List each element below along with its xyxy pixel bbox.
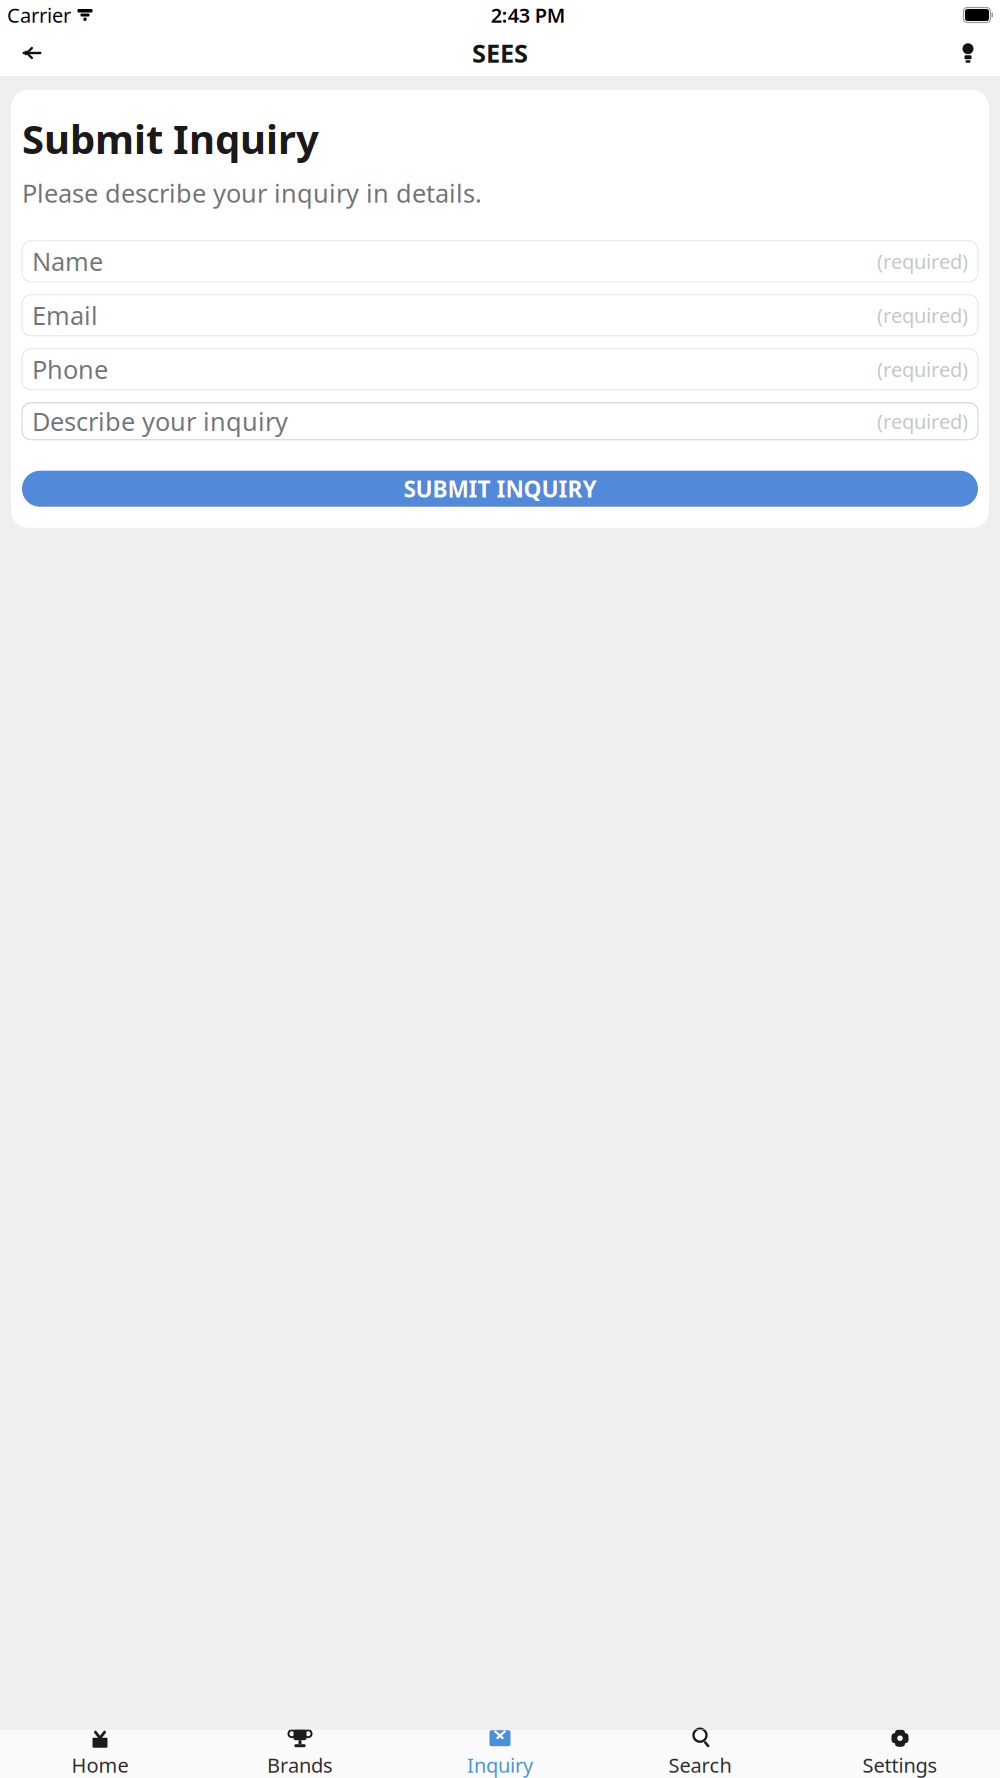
staticText: Please describe your inquiry in details. <box>22 176 482 210</box>
staticText: Inquiry <box>467 1752 533 1778</box>
staticText: Carrier <box>7 2 71 28</box>
staticText: SEES <box>472 36 528 70</box>
staticText: Submit Inquiry <box>22 112 319 165</box>
staticText: Name <box>32 244 103 278</box>
button[interactable]: Search <box>600 1729 800 1778</box>
staticText: Brands <box>267 1752 333 1778</box>
staticText: (required) <box>877 408 968 435</box>
staticText: Home <box>71 1752 128 1778</box>
button[interactable]: Tips <box>942 30 994 76</box>
staticText: Describe your inquiry <box>32 404 288 438</box>
button[interactable]: Settings <box>800 1729 1000 1778</box>
staticText: Phone <box>32 352 108 386</box>
button[interactable]: Inquiry <box>400 1729 600 1778</box>
staticText: Email <box>32 298 98 332</box>
button[interactable]: Phone <box>22 349 978 390</box>
button[interactable]: Home <box>0 1729 200 1778</box>
button[interactable]: Describe your inquiry <box>22 403 978 440</box>
button[interactable]: Brands <box>200 1729 400 1778</box>
button[interactable]: Email <box>22 295 978 336</box>
staticText: 2:43 PM <box>491 2 566 28</box>
staticText: Settings <box>862 1752 937 1778</box>
staticText: Search <box>668 1752 731 1778</box>
staticText: SUBMIT INQUIRY <box>403 474 596 504</box>
staticText: (required) <box>877 302 968 329</box>
button[interactable]: SUBMIT INQUIRY <box>22 471 978 507</box>
staticText: (required) <box>877 248 968 275</box>
button[interactable]: Back <box>6 30 58 76</box>
staticText: (required) <box>877 356 968 383</box>
button[interactable]: Name <box>22 241 978 282</box>
